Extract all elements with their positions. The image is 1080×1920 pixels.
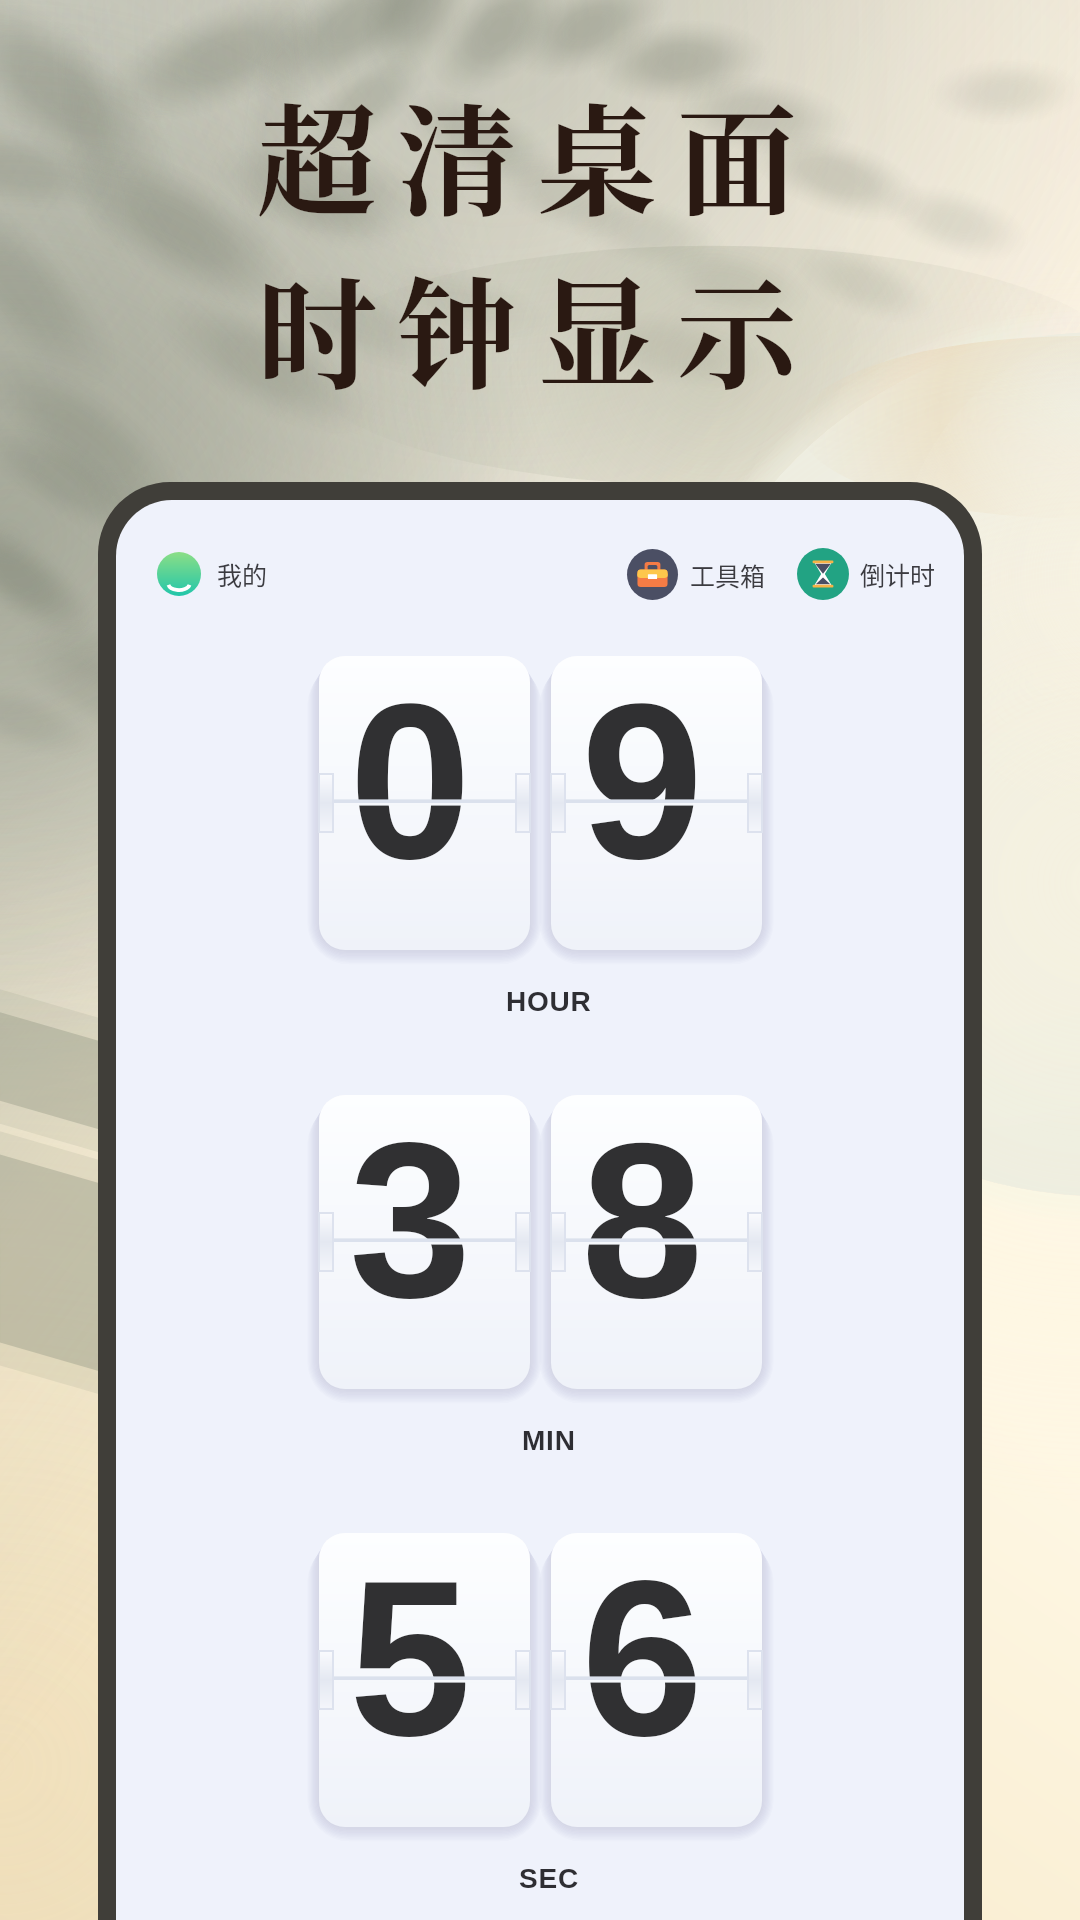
staticText: 6 [581, 1536, 704, 1782]
button[interactable]: MIN tens digit 3 [319, 1095, 530, 1389]
staticText: SEC [519, 1863, 579, 1894]
staticText: 8 [581, 1098, 704, 1344]
button[interactable]: 我的 [157, 552, 268, 596]
button[interactable]: 工具箱 [627, 549, 766, 600]
staticText: 工具箱 [690, 557, 766, 593]
staticText: HOUR [506, 986, 592, 1017]
staticText: 时钟显示 [257, 241, 817, 413]
button[interactable]: SEC tens digit 5 [319, 1533, 530, 1827]
staticText: MIN [522, 1425, 576, 1456]
staticText: 我的 [217, 556, 268, 592]
staticText: 9 [581, 659, 704, 905]
staticText: 3 [349, 1098, 472, 1344]
button[interactable]: HOUR ones digit 9 [551, 656, 762, 950]
button[interactable]: HOUR tens digit 0 [319, 656, 530, 950]
staticText: 超清桌面 [257, 68, 817, 240]
staticText: 5 [349, 1536, 472, 1782]
button[interactable]: MIN ones digit 8 [551, 1095, 762, 1389]
staticText: 0 [349, 659, 472, 905]
button[interactable]: 倒计时 [797, 548, 936, 600]
button[interactable]: SEC ones digit 6 [551, 1533, 762, 1827]
staticText: 倒计时 [860, 556, 936, 592]
